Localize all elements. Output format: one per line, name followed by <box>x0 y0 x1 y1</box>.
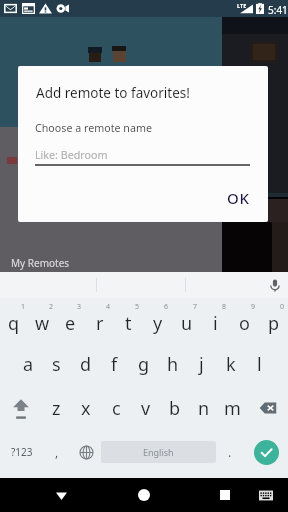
button[interactable]: 1 <box>0 298 28 342</box>
staticText: h <box>167 352 179 377</box>
staticText: m <box>224 396 241 421</box>
button[interactable]: m <box>218 386 247 430</box>
button[interactable]: 7 <box>172 298 201 342</box>
staticText: n <box>198 396 210 421</box>
button[interactable]: 8 <box>201 298 230 342</box>
staticText: 8 <box>222 302 227 312</box>
staticText: 1 <box>21 302 26 312</box>
staticText: 4 <box>106 302 111 312</box>
button[interactable]: Voice input <box>262 272 288 298</box>
button[interactable]: 5 <box>114 298 143 342</box>
button[interactable]: a <box>14 342 42 386</box>
button[interactable]: h <box>158 342 187 386</box>
staticText: . <box>228 444 232 460</box>
button[interactable]: Enter <box>244 430 288 474</box>
button[interactable]: z <box>41 386 71 430</box>
staticText: c <box>112 396 121 421</box>
staticText: x <box>81 396 91 421</box>
staticText: s <box>52 352 61 377</box>
staticText: 5:41 <box>268 3 288 17</box>
staticText: 3 <box>77 302 82 312</box>
staticText: v <box>141 396 151 421</box>
staticText: My Remotes <box>11 256 70 270</box>
button[interactable]: OK <box>216 185 260 211</box>
staticText: b <box>169 396 181 421</box>
staticText: 7 <box>193 302 198 312</box>
button[interactable]: ?123 <box>0 430 43 474</box>
button[interactable]: . <box>216 430 244 474</box>
staticText: 9 <box>251 302 256 312</box>
staticText: Add remote to favorites! <box>36 84 190 102</box>
staticText: w <box>35 311 50 336</box>
button[interactable]: j <box>187 342 216 386</box>
staticText: ?123 <box>11 445 33 459</box>
staticText: i <box>213 311 218 336</box>
button[interactable]: 3 <box>56 298 85 342</box>
staticText: p <box>268 311 280 336</box>
button[interactable]: x <box>71 386 101 430</box>
button[interactable]: Shift <box>0 386 41 430</box>
staticText: 6 <box>164 302 169 312</box>
button[interactable]: v <box>131 386 160 430</box>
button[interactable]: Home <box>126 478 161 512</box>
staticText: , <box>55 444 59 460</box>
staticText: y <box>153 311 163 336</box>
button[interactable]: d <box>71 342 100 386</box>
staticText: e <box>65 311 76 336</box>
button[interactable]: 4 <box>85 298 114 342</box>
button[interactable]: Backspace <box>247 386 288 430</box>
staticText: 0 <box>280 302 285 312</box>
button[interactable]: 2 <box>28 298 56 342</box>
staticText: a <box>23 352 34 377</box>
staticText: t <box>125 311 132 336</box>
staticText: LTE <box>237 2 247 9</box>
staticText: k <box>226 352 236 377</box>
staticText: 5 <box>135 302 140 312</box>
button[interactable]: Recents <box>207 478 242 512</box>
button[interactable]: , <box>43 430 71 474</box>
button[interactable]: g <box>129 342 158 386</box>
button[interactable]: 6 <box>143 298 172 342</box>
button[interactable]: c <box>101 386 131 430</box>
staticText: f <box>111 352 118 377</box>
staticText: j <box>199 352 204 377</box>
staticText: Choose a remote name <box>35 121 152 136</box>
staticText: l <box>257 352 262 377</box>
button[interactable]: f <box>100 342 129 386</box>
staticText: OK <box>227 188 250 208</box>
staticText: q <box>8 311 20 336</box>
staticText: o <box>239 311 250 336</box>
staticText: English <box>143 446 174 458</box>
button[interactable]: Back <box>44 478 79 512</box>
button[interactable]: s <box>42 342 71 386</box>
button[interactable]: k <box>216 342 245 386</box>
button[interactable]: n <box>189 386 218 430</box>
button[interactable]: 0 <box>259 298 288 342</box>
button[interactable]: l <box>245 342 274 386</box>
button[interactable]: Keyboard <box>249 478 282 512</box>
staticText: g <box>138 352 150 377</box>
staticText: r <box>96 311 104 336</box>
button[interactable]: 9 <box>230 298 259 342</box>
staticText: d <box>80 352 92 377</box>
staticText: z <box>52 396 61 421</box>
staticText: Like: Bedroom <box>35 148 108 163</box>
button[interactable]: English <box>101 441 216 463</box>
staticText: 2 <box>49 302 54 312</box>
staticText: u <box>181 311 193 336</box>
button[interactable]: Change language <box>71 430 101 474</box>
button[interactable]: b <box>160 386 189 430</box>
